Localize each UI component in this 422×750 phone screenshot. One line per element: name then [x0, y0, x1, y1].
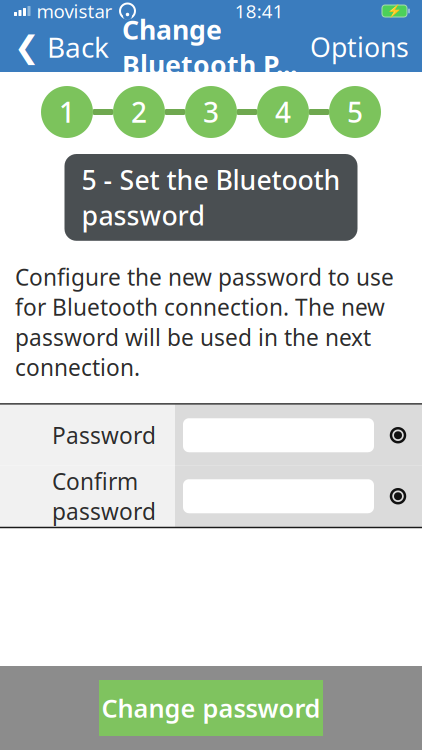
staticText: 5 - Set the Bluetooth password — [81, 162, 340, 233]
staticText: 1 — [59, 93, 75, 131]
button[interactable]: Change password — [99, 680, 323, 736]
staticText: 5 — [347, 93, 363, 131]
staticText: ⚡ — [387, 4, 402, 18]
button[interactable]: Show Password — [386, 423, 422, 447]
button[interactable]: ❮ — [0, 20, 109, 74]
staticText: Configure the new password to use for Bl… — [15, 262, 394, 382]
staticText: 4 — [275, 93, 291, 131]
staticText: Options — [310, 29, 409, 65]
staticText: 18:41 — [235, 0, 284, 23]
staticText: Change password — [101, 691, 320, 725]
staticText: 2 — [131, 93, 147, 131]
staticText: Back — [47, 28, 109, 66]
staticText: Confirm password — [52, 466, 156, 526]
staticText: ❮ — [14, 30, 40, 64]
staticText: movistar — [36, 0, 112, 23]
button[interactable]: Show Confirm password — [386, 484, 422, 508]
staticText: Change Bluetooth P... — [122, 12, 297, 82]
staticText: Password — [52, 420, 156, 450]
staticText: 3 — [203, 93, 219, 131]
button[interactable]: Options — [310, 21, 422, 73]
